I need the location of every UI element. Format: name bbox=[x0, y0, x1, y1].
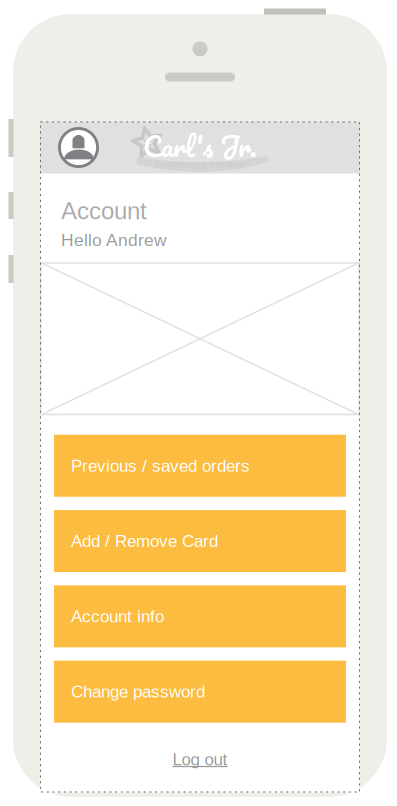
button[interactable]: Previous / saved orders bbox=[54, 435, 346, 497]
button[interactable]: Change password bbox=[54, 661, 346, 723]
staticText: Account bbox=[61, 197, 147, 224]
staticText: Add / Remove Card bbox=[71, 532, 218, 551]
staticText: Log out bbox=[172, 750, 227, 769]
staticText: Hello Andrew bbox=[61, 230, 167, 250]
button[interactable]: Profile bbox=[58, 127, 99, 168]
button[interactable]: Log out bbox=[54, 736, 346, 783]
staticText: CHARBROILED BURGERS bbox=[155, 161, 245, 169]
staticText: Previous / saved orders bbox=[71, 456, 250, 475]
staticText: Change password bbox=[71, 682, 205, 701]
staticText: Carl's Jr. bbox=[143, 123, 257, 169]
button[interactable]: Account info bbox=[54, 585, 346, 647]
staticText: Account info bbox=[71, 607, 164, 626]
button[interactable]: Add / Remove Card bbox=[54, 510, 346, 572]
